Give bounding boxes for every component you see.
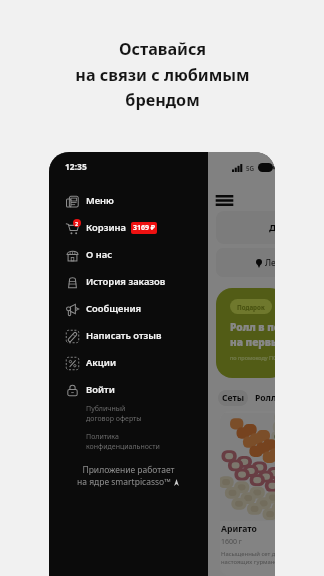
staticText: Аригато: [221, 523, 257, 535]
button[interactable]: Публичный договор оферты: [86, 404, 142, 424]
staticText: История заказов: [86, 275, 166, 288]
staticText: 2: [75, 220, 79, 227]
button[interactable]: Подарок: [216, 288, 275, 378]
button[interactable]: История заказов: [49, 268, 208, 295]
button[interactable]: О нас: [49, 241, 208, 268]
staticText: Лесосибирск: [265, 257, 275, 269]
staticText: Меню: [86, 194, 114, 207]
staticText: 12:35: [65, 161, 87, 173]
staticText: 3169 ₽: [133, 223, 156, 233]
button[interactable]: Аригато: [220, 411, 275, 576]
staticText: Подарок: [237, 303, 265, 311]
staticText: на ядре smartpicasso™: [77, 476, 171, 488]
button[interactable]: Меню: [49, 187, 208, 214]
staticText: Войти: [86, 383, 115, 396]
button[interactable]: Войти: [49, 376, 208, 403]
button[interactable]: Лесосибирск: [216, 248, 275, 277]
staticText: Оставайся на связи с любимым брендом: [75, 38, 250, 111]
button[interactable]: Open navigation menu: [212, 188, 236, 212]
staticText: по промокоду ПОДАРОК: [230, 354, 275, 361]
button[interactable]: Сообщения: [49, 295, 208, 322]
staticText: О нас: [86, 248, 112, 261]
staticText: Акции: [86, 356, 117, 369]
staticText: Приложение работает: [82, 464, 175, 476]
staticText: 5G: [246, 164, 255, 172]
button[interactable]: Сеты: [218, 390, 248, 406]
button[interactable]: 2: [49, 214, 208, 241]
button[interactable]: Роллы: [254, 390, 275, 406]
button[interactable]: Политика конфиденциальности: [86, 432, 160, 452]
staticText: Ролл в подарок на первый заказ: [230, 320, 275, 349]
staticText: Написать отзыв: [86, 329, 162, 342]
staticText: Насыщенный сет для настоящих гурманов: [221, 550, 275, 566]
staticText: Сеты: [222, 392, 245, 404]
staticText: Доставка: [269, 221, 275, 234]
staticText: Корзина: [86, 221, 127, 234]
staticText: 1600 г: [221, 537, 242, 547]
staticText: Роллы: [255, 392, 275, 404]
button[interactable]: Акции: [49, 349, 208, 376]
button[interactable]: Написать отзыв: [49, 322, 208, 349]
button[interactable]: Доставка: [216, 211, 275, 244]
staticText: Сообщения: [86, 302, 142, 315]
